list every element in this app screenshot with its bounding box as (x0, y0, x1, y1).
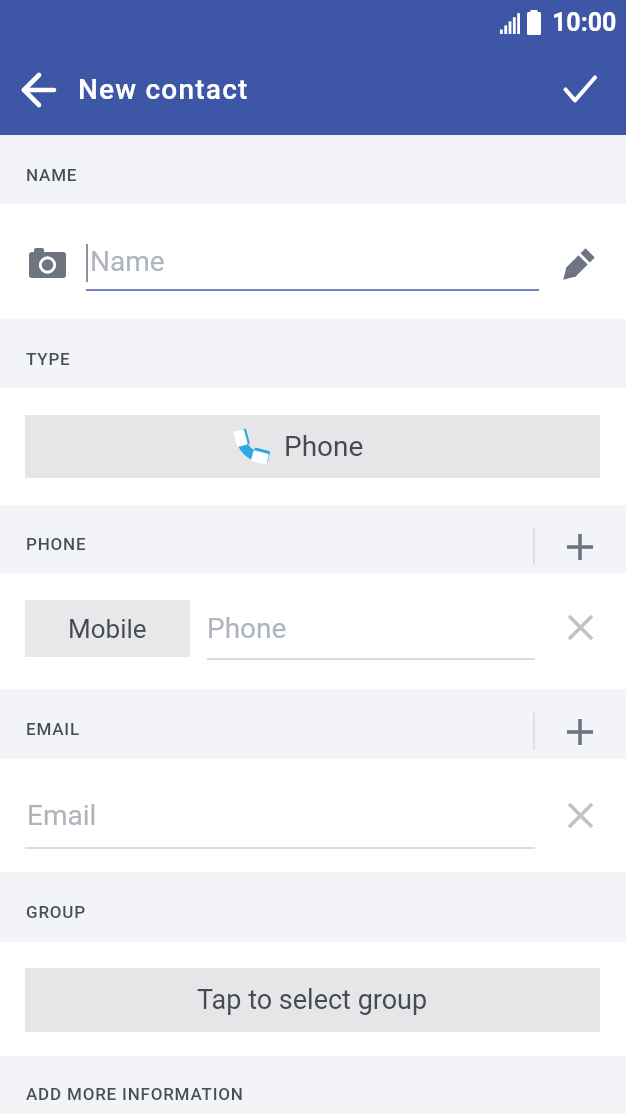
button[interactable]: Phone (25, 415, 600, 478)
staticText: Mobile (68, 614, 147, 644)
staticText: Email (27, 799, 97, 832)
staticText: ADD MORE INFORMATION (26, 1084, 244, 1104)
button[interactable]: Tap to select group (25, 968, 600, 1032)
staticText: TYPE (26, 349, 71, 369)
button[interactable] (554, 245, 598, 289)
staticText: Tap to select group (197, 984, 428, 1016)
button[interactable] (560, 795, 600, 835)
staticText: PHONE (26, 534, 87, 554)
staticText: Phone (284, 430, 364, 463)
staticText: GROUP (26, 902, 86, 922)
staticText: EMAIL (26, 719, 80, 739)
button[interactable] (26, 245, 70, 283)
staticText: Phone (207, 612, 287, 645)
staticText: NAME (26, 165, 78, 185)
button[interactable] (18, 70, 58, 110)
button[interactable]: Mobile (25, 600, 190, 657)
button[interactable] (560, 712, 600, 752)
button[interactable] (560, 70, 600, 110)
staticText: New contact (78, 73, 249, 106)
button[interactable] (560, 607, 600, 647)
button[interactable] (560, 527, 600, 567)
staticText: 10:00 (552, 8, 617, 37)
staticText: Name (90, 245, 165, 278)
